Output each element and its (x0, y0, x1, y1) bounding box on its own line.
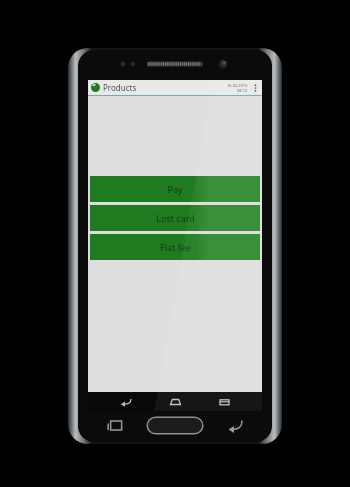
button[interactable]: Recents (213, 392, 235, 411)
button[interactable]: Pay (90, 176, 260, 202)
button[interactable]: Back (115, 392, 137, 411)
button[interactable]: More options (252, 81, 259, 95)
staticText: Pay (167, 183, 183, 195)
button[interactable]: Lost card (90, 205, 260, 231)
staticText: 16.02.2016 (227, 83, 248, 88)
button[interactable]: Flat fee (90, 234, 260, 260)
button[interactable]: Home (164, 392, 186, 411)
staticText: Flat fee (160, 241, 191, 253)
staticText: Lost card (156, 212, 195, 224)
staticText: Products (103, 82, 137, 93)
staticText: 08:12 (237, 88, 248, 93)
